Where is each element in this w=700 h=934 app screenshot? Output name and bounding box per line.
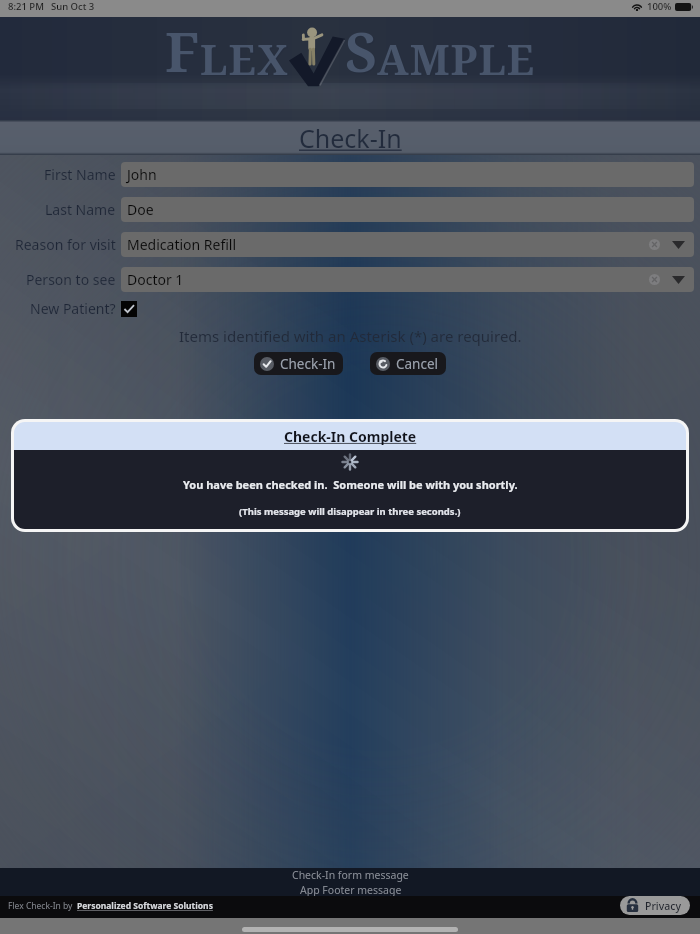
staticText: S	[346, 14, 378, 89]
staticText: Personalized Software Solutions	[77, 900, 213, 912]
staticText: Check-In Complete	[284, 427, 417, 446]
button[interactable]: Doe	[121, 197, 694, 222]
button[interactable]: Medication Refill	[121, 232, 694, 257]
staticText: 100%	[647, 0, 672, 13]
staticText: You have been checked in. Someone will b…	[183, 477, 518, 492]
staticText: Medication Refill	[127, 235, 237, 254]
staticText: First Name	[44, 165, 116, 184]
button[interactable]: Cancel	[370, 352, 446, 375]
staticText: Sun Oct 3	[51, 0, 95, 13]
staticText: (This message will disappear in three se…	[239, 505, 461, 518]
staticText: Reason for visit	[15, 235, 116, 254]
staticText: Check-In	[280, 355, 336, 373]
staticText: Flex Check-In by	[8, 900, 77, 912]
staticText: Privacy	[645, 899, 681, 913]
button[interactable]: New patient checkbox	[121, 301, 137, 317]
button[interactable]: Open dropdown	[672, 241, 685, 249]
staticText: New Patient?	[30, 299, 116, 318]
button[interactable]: Clear	[649, 274, 660, 285]
button[interactable]: Personalized Software Solutions	[77, 900, 213, 912]
staticText: Doctor 1	[127, 270, 184, 289]
staticText: F	[165, 13, 200, 88]
button[interactable]: Doctor 1	[121, 267, 694, 292]
staticText: LEX	[201, 31, 290, 88]
button[interactable]: Check-In	[254, 352, 343, 375]
staticText: Doe	[127, 200, 154, 219]
staticText: LEX	[200, 30, 289, 87]
staticText: John	[127, 165, 157, 184]
staticText: Check-In form message	[292, 868, 409, 882]
staticText: Person to see	[26, 270, 116, 289]
staticText: F	[166, 14, 201, 89]
button[interactable]: Privacy	[620, 896, 690, 915]
staticText: AMPLE	[377, 30, 536, 87]
staticText: App Footer message	[300, 883, 402, 896]
staticText: Cancel	[396, 355, 439, 373]
staticText: 8:21 PM	[8, 0, 44, 13]
staticText: Last Name	[45, 200, 116, 219]
button[interactable]: John	[121, 162, 694, 187]
staticText: AMPLE	[378, 31, 537, 88]
staticText: S	[345, 13, 377, 88]
button[interactable]: Open dropdown	[672, 276, 685, 284]
staticText: Check-In	[299, 121, 402, 155]
staticText: Items identified with an Asterisk (*) ar…	[179, 326, 522, 346]
button[interactable]: Clear	[649, 239, 660, 250]
